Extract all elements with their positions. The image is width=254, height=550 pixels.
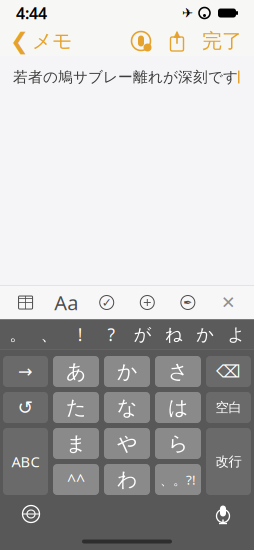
staticText: ま [66,431,86,456]
button[interactable]: 共有の追加 [128,29,154,53]
button[interactable]: ❮ [0,24,72,58]
button[interactable]: 書式 [51,289,81,315]
staticText: よ [227,324,245,345]
staticText: 。 [9,324,26,345]
button[interactable]: か [189,320,221,348]
staticText: 、。?! [160,471,196,488]
staticText: ✈ [182,5,193,20]
staticText: Aa [54,289,78,316]
staticText: ✕ [221,293,236,312]
staticText: さ [168,359,188,384]
button[interactable]: な [104,392,150,423]
button[interactable]: 閉じる [213,289,243,315]
button[interactable]: 改行 [206,428,251,495]
button[interactable]: ら [155,428,201,459]
staticText: や [117,431,137,456]
button[interactable]: ま [53,428,99,459]
staticText: ⌫ [216,362,241,381]
staticText: ら [168,431,188,456]
staticText: は [168,395,188,420]
staticText: 若者の鳩サブレー離れが深刻です [13,68,238,86]
staticText: な [117,395,137,420]
button[interactable]: 追加 [132,289,162,315]
staticText: 4:44 [16,2,47,24]
staticText: 完了 [202,29,242,53]
button[interactable]: ! [64,320,96,348]
button[interactable]: 音声入力 [206,497,240,531]
button[interactable]: マークアップ [173,289,203,315]
staticText: → [18,362,33,381]
button[interactable]: ^^ [53,464,99,495]
staticText: 空白 [215,399,241,416]
button[interactable]: あ [53,356,99,387]
button[interactable]: ⌫ [206,356,251,387]
staticText: ね [165,324,183,345]
button[interactable]: 。 [2,320,33,348]
staticText: た [66,395,86,420]
button[interactable]: 、 [33,320,64,348]
button[interactable]: 表 [11,289,41,315]
button[interactable]: 、。?! [155,464,201,495]
button[interactable]: ABC [3,428,48,495]
button[interactable]: よ [221,320,252,348]
button[interactable]: ↺ [3,392,48,423]
button[interactable]: 完了 [190,25,254,57]
staticText: ABC [11,452,39,471]
button[interactable]: や [104,428,150,459]
button[interactable]: → [3,356,48,387]
button[interactable]: チェックリスト [92,289,122,315]
staticText: ^^ [67,469,85,490]
staticText: ↺ [17,397,33,418]
button[interactable]: 共有 [154,29,190,53]
button[interactable]: ね [158,320,189,348]
staticText: ✒ [183,296,192,308]
staticText: わ [117,467,137,492]
button[interactable]: 空白 [206,392,251,423]
staticText: 改行 [215,453,241,470]
button[interactable]: は [155,392,201,423]
staticText: ▲ [173,28,180,39]
button[interactable]: わ [104,464,150,495]
button[interactable]: た [53,392,99,423]
button[interactable]: さ [155,356,201,387]
button[interactable]: ? [96,320,127,348]
staticText: あ [66,359,86,384]
staticText: 、 [40,324,57,345]
staticText: が [134,324,152,345]
staticText: か [117,359,137,384]
staticText: ? [107,323,115,346]
staticText: メモ [32,29,72,53]
staticText: か [196,324,214,345]
staticText: ✓ [102,296,112,309]
button[interactable]: か [104,356,150,387]
button[interactable]: が [127,320,158,348]
staticText: ❮ [10,28,29,54]
button[interactable]: 次のキーボード [14,497,48,531]
staticText: ! [78,323,83,346]
